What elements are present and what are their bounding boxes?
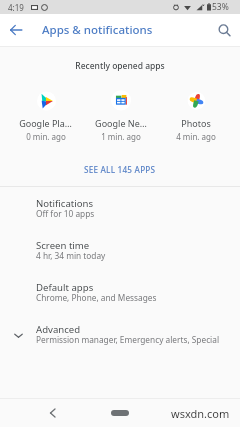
staticText: Google Pla… — [19, 117, 72, 129]
button[interactable]: Notifications — [0, 188, 240, 230]
staticText: Default apps — [36, 281, 94, 294]
button[interactable]: SEE ALL 145 APPS — [0, 156, 240, 182]
staticText: Notifications — [36, 197, 94, 210]
staticText: 4:19 — [8, 2, 24, 13]
staticText: 4 min. ago — [176, 131, 216, 142]
staticText: Screen time — [36, 239, 90, 252]
button[interactable]: Back — [40, 401, 64, 425]
button[interactable]: Google Pla… — [8, 89, 83, 142]
staticText: Apps & notifications — [42, 22, 153, 38]
staticText: SEE ALL 145 APPS — [84, 164, 156, 175]
staticText: wsxdn.com — [171, 406, 230, 421]
staticText: Recently opened apps — [0, 60, 240, 72]
staticText: 53% — [212, 1, 229, 13]
button[interactable]: Screen time — [0, 230, 240, 272]
button[interactable]: Back — [0, 14, 32, 46]
staticText: Photos — [181, 117, 211, 129]
staticText: Google Ne… — [95, 117, 147, 129]
button[interactable]: Advanced — [0, 314, 240, 356]
staticText: Permission manager, Emergency alerts, Sp… — [36, 334, 232, 345]
staticText: Advanced — [36, 323, 81, 336]
button[interactable]: Google Ne… — [83, 89, 158, 142]
button[interactable]: Search — [208, 14, 240, 46]
button[interactable]: Photos — [158, 89, 233, 142]
staticText: Chrome, Phone, and Messages — [36, 292, 157, 303]
staticText: Off for 10 apps — [36, 208, 95, 219]
button[interactable]: Home — [111, 410, 129, 416]
staticText: 4 hr, 34 min today — [36, 250, 106, 261]
staticText: 0 min. ago — [26, 131, 66, 142]
staticText: 1 min. ago — [101, 131, 141, 142]
button[interactable]: Default apps — [0, 272, 240, 314]
